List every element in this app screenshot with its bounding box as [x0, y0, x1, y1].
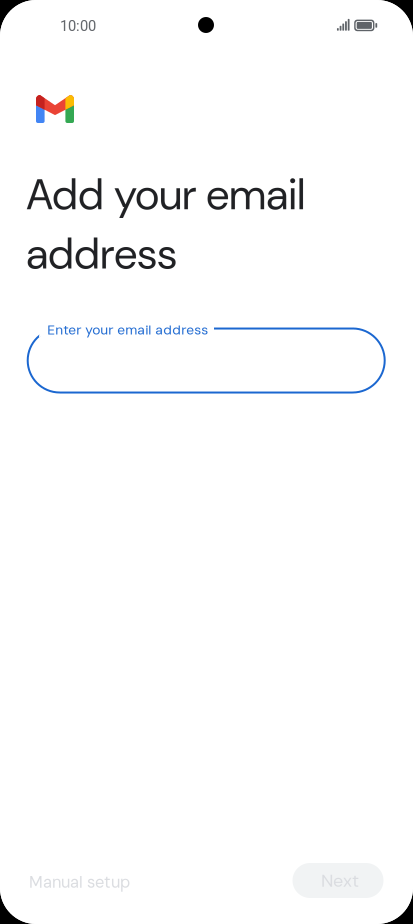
staticText: Manual setup [29, 871, 130, 893]
staticText: Enter your email address [47, 321, 208, 339]
staticText: 10:00 [60, 17, 96, 35]
staticText: Next [321, 869, 359, 892]
staticText: Add your email address [26, 167, 305, 282]
button[interactable]: Manual setup [15, 859, 144, 905]
button[interactable]: Next [292, 863, 383, 898]
button[interactable]: Enter your email address [47, 321, 208, 339]
